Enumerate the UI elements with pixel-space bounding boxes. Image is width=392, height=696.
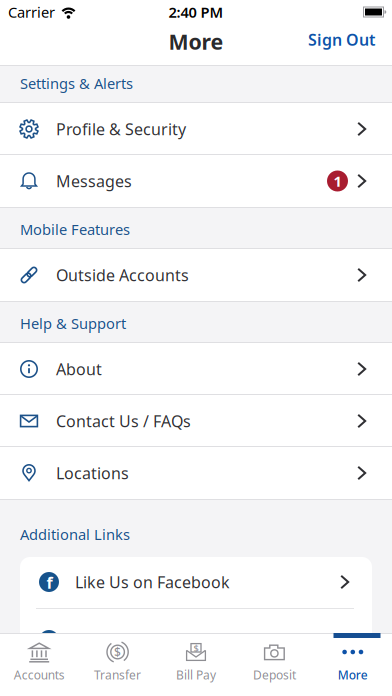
button[interactable]: About bbox=[0, 343, 392, 395]
staticText: Settings & Alerts bbox=[20, 73, 133, 93]
button[interactable]: More bbox=[314, 633, 392, 683]
staticText: Outside Accounts bbox=[56, 264, 189, 286]
button[interactable]: Sign Out bbox=[308, 29, 375, 50]
staticText: More bbox=[168, 27, 223, 56]
staticText: About bbox=[56, 358, 102, 380]
button[interactable]: Contact Us / FAQs bbox=[0, 395, 392, 447]
staticText: Contact Us / FAQs bbox=[56, 410, 191, 432]
button[interactable]: Locations bbox=[0, 447, 392, 499]
staticText: $ bbox=[114, 644, 121, 660]
staticText: 2:40 PM bbox=[168, 2, 223, 22]
button[interactable]: Follow Us on Twitter bbox=[20, 609, 372, 650]
button[interactable]: $ bbox=[157, 633, 235, 683]
button[interactable]: $ bbox=[78, 633, 157, 683]
staticText: Messages bbox=[56, 170, 132, 192]
staticText: Profile & Security bbox=[56, 118, 186, 140]
button[interactable]: Messages bbox=[0, 155, 392, 207]
staticText: $ bbox=[193, 642, 198, 654]
staticText: Accounts bbox=[14, 667, 65, 683]
staticText: Locations bbox=[56, 462, 129, 484]
staticText: f bbox=[46, 572, 52, 593]
staticText: Bill Pay bbox=[176, 667, 216, 683]
staticText: More bbox=[338, 667, 368, 683]
button[interactable]: Profile & Security bbox=[0, 103, 392, 155]
staticText: Help & Support bbox=[20, 313, 126, 333]
staticText: Carrier bbox=[8, 2, 55, 22]
staticText: Like Us on Facebook bbox=[75, 571, 230, 593]
staticText: 1 bbox=[333, 171, 341, 191]
button[interactable]: Accounts bbox=[0, 633, 78, 683]
button[interactable]: f bbox=[20, 556, 372, 608]
button[interactable]: Outside Accounts bbox=[0, 249, 392, 301]
button[interactable]: Deposit bbox=[235, 633, 314, 683]
staticText: Additional Links bbox=[20, 524, 130, 544]
staticText: Mobile Features bbox=[20, 219, 130, 239]
staticText: Transfer bbox=[94, 667, 141, 683]
staticText: Sign Out bbox=[308, 29, 375, 50]
staticText: Deposit bbox=[253, 667, 296, 683]
